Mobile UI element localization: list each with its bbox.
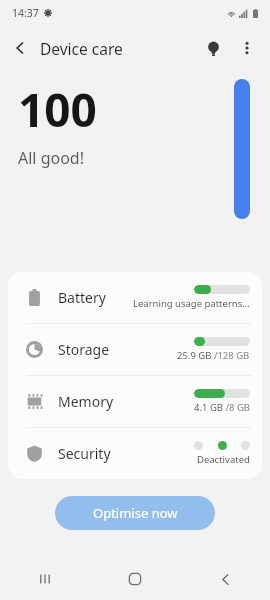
- staticText: 100: [18, 78, 97, 141]
- button[interactable]: Memory: [8, 376, 262, 427]
- staticText: 14:37: [12, 6, 39, 20]
- staticText: Deactivated: [197, 453, 250, 466]
- button[interactable]: Tips: [196, 31, 230, 65]
- staticText: Storage: [58, 340, 110, 359]
- button[interactable]: Storage: [8, 324, 262, 375]
- button[interactable]: Home: [90, 558, 180, 600]
- staticText: All good!: [18, 147, 84, 169]
- staticText: 25.9 GB /128 GB: [177, 349, 250, 362]
- staticText: Security: [58, 444, 111, 463]
- button[interactable]: Back: [0, 28, 40, 68]
- staticText: 4.1 GB /8 GB: [194, 401, 250, 414]
- button[interactable]: Back: [180, 558, 270, 600]
- staticText: Memory: [58, 392, 114, 411]
- button[interactable]: Battery: [8, 272, 262, 323]
- staticText: Optimise now: [93, 504, 178, 522]
- button[interactable]: Optimise now: [55, 496, 215, 530]
- staticText: Learning usage patterns…: [133, 297, 250, 310]
- button[interactable]: Recent apps: [0, 558, 90, 600]
- staticText: Battery: [58, 288, 106, 307]
- button[interactable]: Security: [8, 428, 262, 479]
- button[interactable]: More options: [230, 31, 264, 65]
- staticText: Device care: [40, 38, 123, 59]
